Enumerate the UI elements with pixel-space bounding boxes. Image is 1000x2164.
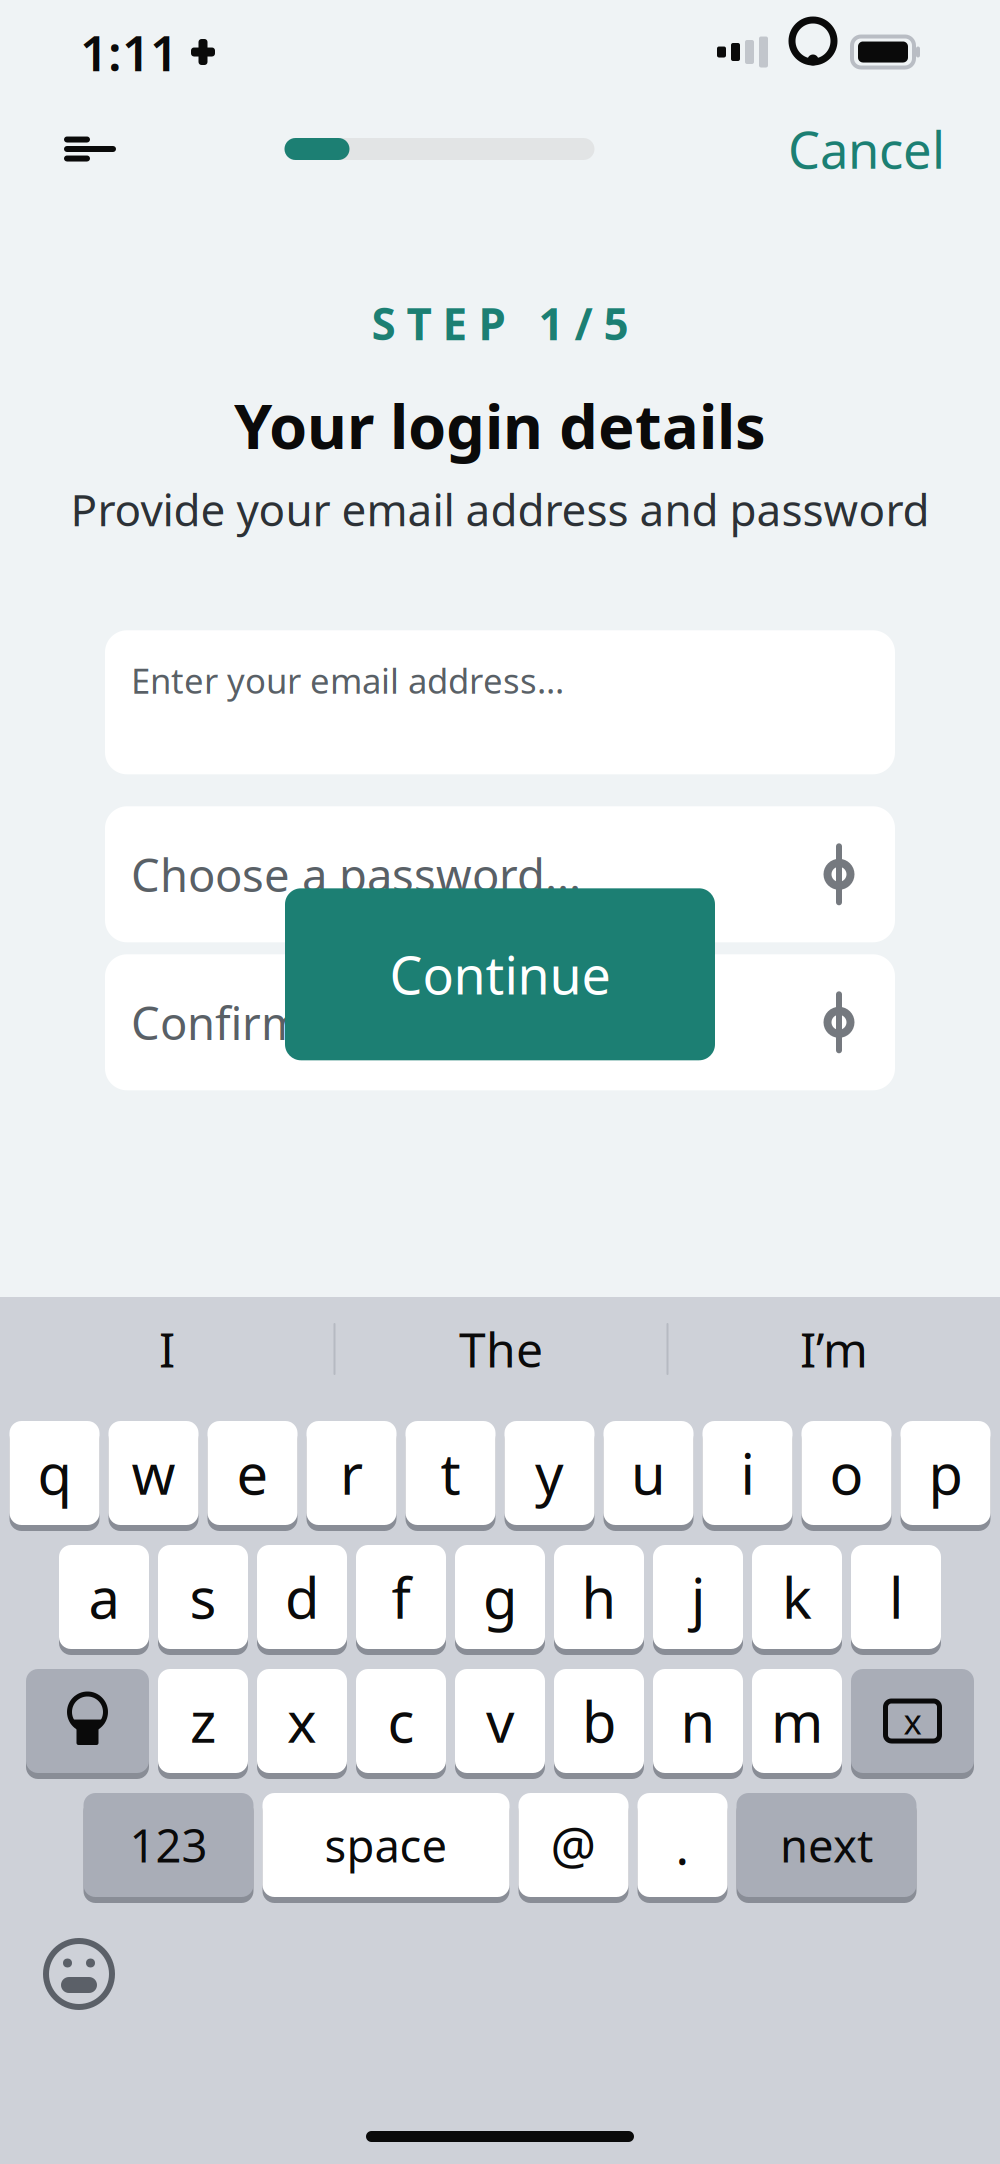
staticText: Confirm your password...: [131, 992, 666, 1052]
button[interactable]: 123: [83, 1793, 253, 1903]
staticText: p: [928, 1436, 962, 1510]
staticText: h: [581, 1560, 616, 1634]
staticText: y: [535, 1436, 564, 1510]
button[interactable]: I: [0, 1297, 333, 1401]
staticText: l: [889, 1560, 903, 1634]
staticText: 123: [129, 1815, 207, 1875]
button[interactable]: Cancel: [778, 114, 955, 184]
staticText: c: [387, 1684, 414, 1758]
staticText: Cancel: [788, 115, 945, 183]
staticText: b: [582, 1684, 616, 1758]
staticText: v: [486, 1684, 514, 1758]
button[interactable]: a: [59, 1545, 149, 1655]
button[interactable]: z: [158, 1669, 248, 1779]
staticText: I: [159, 1317, 175, 1381]
staticText: r: [340, 1436, 363, 1510]
button[interactable]: Emoji: [36, 1931, 122, 2017]
staticText: j: [691, 1560, 705, 1634]
button[interactable]: x: [257, 1669, 347, 1779]
button[interactable]: l: [851, 1545, 941, 1655]
staticText: s: [189, 1560, 216, 1634]
staticText: a: [88, 1560, 119, 1634]
staticText: Continue: [389, 940, 610, 1009]
button[interactable]: I’m: [668, 1297, 999, 1401]
button[interactable]: d: [257, 1545, 347, 1655]
button[interactable]: i: [702, 1421, 792, 1531]
button[interactable]: r: [306, 1421, 396, 1531]
staticText: x: [287, 1684, 317, 1758]
button[interactable]: Back: [45, 114, 135, 184]
staticText: o: [829, 1436, 863, 1510]
button[interactable]: The: [335, 1297, 666, 1401]
staticText: t: [440, 1436, 460, 1510]
button[interactable]: .: [637, 1793, 727, 1903]
staticText: The: [459, 1317, 543, 1381]
staticText: k: [782, 1560, 812, 1634]
staticText: d: [285, 1560, 319, 1634]
staticText: i: [740, 1436, 754, 1510]
button[interactable]: Delete: [851, 1669, 974, 1779]
button[interactable]: o: [801, 1421, 891, 1531]
staticText: I’m: [800, 1317, 868, 1381]
button[interactable]: j: [653, 1545, 743, 1655]
button[interactable]: Shift: [26, 1669, 149, 1779]
staticText: z: [190, 1684, 216, 1758]
staticText: x: [903, 1698, 921, 1744]
staticText: S T E P 1 / 5: [371, 294, 628, 352]
staticText: f: [391, 1560, 410, 1634]
staticText: 1:11: [80, 19, 178, 85]
button[interactable]: s: [158, 1545, 248, 1655]
staticText: m: [771, 1684, 823, 1758]
staticText: q: [37, 1436, 71, 1510]
button[interactable]: @: [518, 1793, 628, 1903]
staticText: next: [780, 1815, 873, 1875]
staticText: @: [550, 1811, 596, 1879]
staticText: w: [131, 1436, 175, 1510]
staticText: Your login details: [234, 384, 766, 466]
staticText: e: [236, 1436, 268, 1510]
button[interactable]: q: [9, 1421, 99, 1531]
button[interactable]: g: [455, 1545, 545, 1655]
button[interactable]: next: [736, 1793, 916, 1903]
button[interactable]: t: [405, 1421, 495, 1531]
button[interactable]: w: [108, 1421, 198, 1531]
staticText: space: [324, 1815, 447, 1875]
staticText: g: [483, 1560, 517, 1634]
staticText: Provide your email address and password: [70, 480, 929, 538]
button[interactable]: b: [554, 1669, 644, 1779]
staticText: u: [631, 1436, 666, 1510]
button[interactable]: h: [554, 1545, 644, 1655]
button[interactable]: n: [653, 1669, 743, 1779]
button[interactable]: y: [504, 1421, 594, 1531]
button[interactable]: c: [356, 1669, 446, 1779]
staticText: Choose a password...: [131, 844, 581, 904]
button[interactable]: Continue: [285, 888, 715, 1060]
staticText: .: [675, 1811, 689, 1879]
button[interactable]: e: [207, 1421, 297, 1531]
button[interactable]: p: [900, 1421, 990, 1531]
button[interactable]: v: [455, 1669, 545, 1779]
button[interactable]: space: [262, 1793, 509, 1903]
button[interactable]: Show password: [809, 843, 869, 905]
button[interactable]: m: [752, 1669, 842, 1779]
staticText: Enter your email address...: [131, 657, 564, 703]
button[interactable]: f: [356, 1545, 446, 1655]
button[interactable]: k: [752, 1545, 842, 1655]
button[interactable]: u: [603, 1421, 693, 1531]
staticText: n: [680, 1684, 715, 1758]
button[interactable]: Show confirm password: [809, 991, 869, 1053]
